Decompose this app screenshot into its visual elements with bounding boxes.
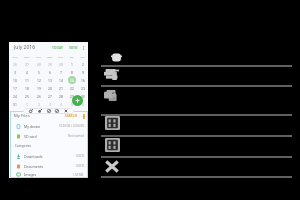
staticText: Downloads — [24, 154, 43, 159]
staticText: 1 — [26, 102, 28, 106]
button[interactable]: 31 — [9, 100, 21, 108]
button[interactable]: 22 — [66, 84, 77, 92]
button[interactable]: 19 — [33, 84, 44, 92]
button[interactable]: 29 — [66, 92, 77, 100]
button[interactable]: 14 — [55, 76, 66, 84]
button[interactable]: 4 — [21, 68, 33, 76]
button[interactable]: 28 — [33, 60, 44, 68]
button[interactable]: Edit — [54, 108, 60, 114]
staticText: 26 — [37, 94, 41, 98]
staticText: MON — [21, 55, 33, 58]
button[interactable]: SEARCH — [65, 114, 78, 118]
button[interactable]: 6 — [77, 100, 88, 108]
button[interactable]: 3 — [9, 68, 21, 76]
staticText: TODAY — [52, 45, 63, 50]
staticText: Categories — [15, 144, 32, 148]
button[interactable]: More options — [82, 44, 85, 52]
button[interactable]: Redo — [37, 108, 43, 114]
staticText: 30 — [81, 94, 85, 98]
button[interactable]: 17 — [9, 84, 21, 92]
staticText: Not inserted — [68, 134, 84, 138]
staticText: 19 — [37, 86, 41, 90]
button[interactable]: Storage — [101, 115, 292, 137]
button[interactable]: 9 — [77, 68, 88, 76]
button[interactable]: 30 — [55, 60, 66, 68]
button[interactable]: Copy — [101, 86, 292, 115]
staticText: Images — [24, 172, 37, 177]
button[interactable]: 3 — [44, 100, 55, 108]
button[interactable]: Close — [101, 157, 292, 177]
button[interactable]: 7 — [55, 68, 66, 76]
button[interactable]: 25 — [21, 92, 33, 100]
button[interactable]: VIEW — [68, 45, 79, 50]
staticText: 0.00 B — [76, 164, 84, 168]
button[interactable]: 30 — [77, 92, 88, 100]
staticText: 4 — [26, 70, 28, 74]
staticText: 18 — [25, 86, 29, 90]
button[interactable]: SD card — [11, 131, 87, 141]
button[interactable]: 26 — [33, 92, 44, 100]
staticText: 2 — [82, 62, 84, 66]
staticText: My device — [24, 124, 41, 129]
button[interactable]: 24 — [9, 92, 21, 100]
staticText: 14 — [59, 78, 63, 82]
staticText: 5 — [71, 102, 73, 106]
button[interactable]: 12 — [33, 76, 44, 84]
button[interactable]: 13 — [44, 76, 55, 84]
button[interactable]: 21 — [55, 84, 66, 92]
staticText: 31 — [13, 102, 17, 106]
button[interactable]: More options — [82, 112, 85, 120]
button[interactable]: 6 — [44, 68, 55, 76]
button[interactable]: 10 — [9, 76, 21, 84]
button[interactable]: 2 — [33, 100, 44, 108]
button[interactable]: Format — [101, 136, 292, 157]
button[interactable]: 1 — [21, 100, 33, 108]
staticText: 9 — [82, 70, 84, 74]
button[interactable]: 11 — [21, 76, 33, 84]
button[interactable]: 29 — [44, 60, 55, 68]
staticText: My Files — [14, 113, 30, 119]
staticText: July 2016 — [14, 44, 36, 51]
button[interactable]: TODAY — [51, 45, 64, 50]
staticText: 29 — [70, 94, 74, 98]
button[interactable]: 16 — [77, 76, 88, 84]
staticText: Documents — [24, 164, 43, 169]
staticText: SD card — [24, 134, 37, 139]
button[interactable]: Select — [46, 108, 52, 114]
staticText: 3 — [14, 70, 16, 74]
button[interactable]: 23 — [77, 84, 88, 92]
button[interactable]: 5 — [33, 68, 44, 76]
staticText: 6 — [49, 70, 51, 74]
button[interactable]: 18 — [21, 84, 33, 92]
button[interactable]: Settings — [101, 44, 292, 66]
button[interactable]: Images — [11, 171, 87, 178]
button[interactable]: Downloads — [11, 151, 87, 161]
button[interactable]: 27 — [44, 92, 55, 100]
button[interactable]: Documents — [11, 161, 87, 171]
button[interactable]: 26 — [9, 60, 21, 68]
staticText: 1.04 MB — [73, 173, 84, 177]
button[interactable]: My device — [11, 121, 87, 131]
staticText: 7 — [60, 70, 62, 74]
button[interactable]: 20 — [44, 84, 55, 92]
button[interactable]: Add event — [72, 95, 83, 106]
staticText: 2 — [38, 102, 40, 106]
staticText: 11 — [25, 78, 29, 82]
staticText: VIEW — [69, 45, 78, 50]
button[interactable]: 27 — [21, 60, 33, 68]
button[interactable]: 5 — [66, 100, 77, 108]
staticText: 15 — [70, 78, 74, 82]
button[interactable]: 15 — [66, 76, 77, 84]
staticText: SUN — [9, 55, 21, 58]
staticText: 26 — [13, 62, 17, 66]
button[interactable]: Undo — [28, 108, 34, 114]
button[interactable]: 1 — [66, 60, 77, 68]
button[interactable]: 2 — [77, 60, 88, 68]
button[interactable]: 4 — [55, 100, 66, 108]
staticText: 4 — [60, 102, 62, 106]
button[interactable]: Close — [63, 108, 69, 114]
button[interactable]: 8 — [66, 68, 77, 76]
button[interactable]: 28 — [55, 92, 66, 100]
staticText: WED — [44, 55, 55, 58]
button[interactable]: Transfer — [101, 66, 292, 86]
